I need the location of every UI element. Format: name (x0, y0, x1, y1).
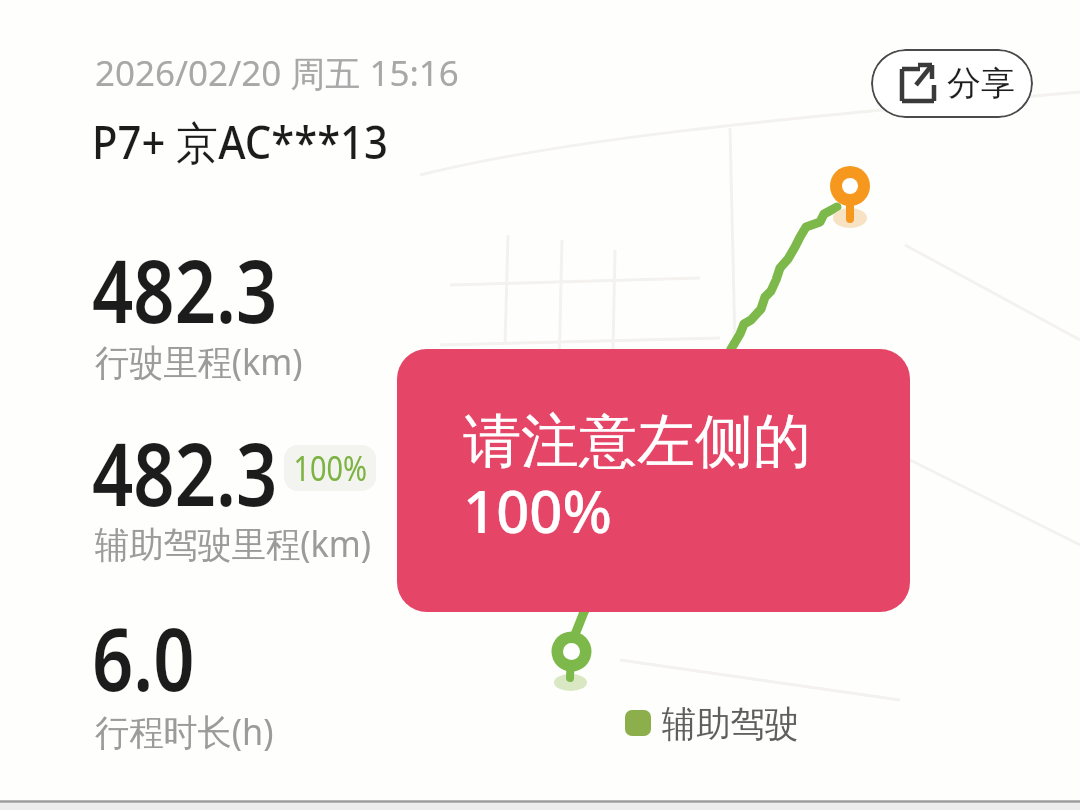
staticText: 100% (293, 445, 367, 491)
staticText: 6.0 (92, 599, 195, 716)
staticText: 分享 (947, 62, 1015, 105)
staticText: 辅助驾驶 (662, 701, 799, 746)
staticText: 行驶里程(km) (95, 337, 303, 386)
staticText: 辅助驾驶里程(km) (95, 519, 371, 568)
staticText: 行程时长(h) (95, 707, 274, 756)
staticText: P7+ 京AC***13 (92, 111, 389, 172)
button[interactable]: 分享 (871, 49, 1033, 118)
staticText: 482.3 (92, 231, 278, 348)
staticText: 100% (463, 471, 612, 550)
button[interactable]: 请注意左侧的 (397, 349, 910, 612)
staticText: 482.3 (92, 414, 278, 531)
staticText: 请注意左侧的 (463, 405, 811, 478)
staticText: 2026/02/20 周五 15:16 (95, 49, 459, 97)
